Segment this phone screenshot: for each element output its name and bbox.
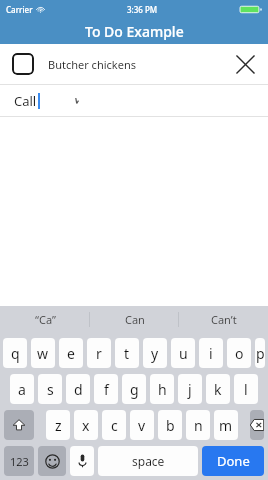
button[interactable]: u	[171, 338, 195, 368]
button[interactable]: space	[98, 446, 198, 476]
button[interactable]: b	[158, 410, 182, 440]
staticText: g	[130, 380, 139, 399]
staticText: h	[158, 380, 167, 399]
button[interactable]: Dictate	[70, 446, 94, 476]
staticText: n	[194, 416, 203, 435]
button[interactable]: Done	[202, 446, 264, 476]
staticText: q	[11, 344, 20, 363]
staticText: Call	[14, 92, 37, 110]
button[interactable]: 123	[4, 446, 34, 476]
staticText: i	[209, 344, 213, 363]
button[interactable]: k	[206, 374, 230, 404]
staticText: c	[111, 416, 118, 435]
button[interactable]: a	[10, 374, 34, 404]
button[interactable]: Backspace	[250, 410, 264, 440]
button[interactable]: d	[66, 374, 90, 404]
staticText: space	[132, 453, 165, 469]
staticText: t	[124, 344, 130, 363]
staticText: y	[151, 344, 159, 363]
staticText: Can’t	[211, 312, 237, 327]
button[interactable]: x	[74, 410, 98, 440]
button[interactable]: m	[214, 410, 238, 440]
staticText: d	[74, 380, 83, 399]
button[interactable]: Shift	[4, 410, 34, 440]
button[interactable]: g	[122, 374, 146, 404]
staticText: Done	[217, 452, 250, 470]
button[interactable]: i	[199, 338, 223, 368]
button[interactable]: f	[94, 374, 118, 404]
button[interactable]: z	[46, 410, 70, 440]
button[interactable]: y	[143, 338, 167, 368]
staticText: 123	[10, 454, 29, 469]
button[interactable]: o	[227, 338, 251, 368]
button[interactable]: Toggle complete	[12, 53, 34, 75]
staticText: Carrier	[6, 4, 33, 15]
staticText: w	[37, 344, 49, 363]
button[interactable]: q	[3, 338, 27, 368]
button[interactable]: e	[59, 338, 83, 368]
staticText: p	[256, 344, 265, 363]
staticText: “Ca”	[35, 312, 56, 327]
button[interactable]: s	[38, 374, 62, 404]
button[interactable]: t	[115, 338, 139, 368]
button[interactable]: w	[31, 338, 55, 368]
staticText: To Do Example	[85, 22, 184, 41]
staticText: v	[138, 416, 146, 435]
button[interactable]: j	[178, 374, 202, 404]
staticText: 3:36 PM	[127, 4, 158, 15]
button[interactable]: h	[150, 374, 174, 404]
staticText: Can	[125, 312, 145, 327]
button[interactable]: n	[186, 410, 210, 440]
staticText: o	[235, 344, 244, 363]
staticText: z	[55, 416, 62, 435]
button[interactable]: Can	[90, 306, 179, 333]
staticText: j	[188, 380, 192, 399]
staticText: a	[18, 380, 26, 399]
button[interactable]: Emoji	[38, 446, 66, 476]
button[interactable]: l	[234, 374, 258, 404]
staticText: e	[67, 344, 75, 363]
staticText: f	[104, 380, 109, 399]
staticText: k	[214, 380, 222, 399]
staticText: l	[244, 380, 248, 399]
staticText: Butcher chickens	[48, 57, 136, 72]
button[interactable]: c	[102, 410, 126, 440]
staticText: x	[82, 416, 90, 435]
staticText: r	[96, 344, 102, 363]
staticText: m	[219, 416, 233, 435]
button[interactable]: Delete	[226, 45, 264, 83]
button[interactable]: p	[255, 338, 265, 368]
button[interactable]: r	[87, 338, 111, 368]
staticText: u	[179, 344, 188, 363]
staticText: b	[166, 416, 175, 435]
button[interactable]: “Ca”	[0, 306, 90, 333]
button[interactable]: v	[130, 410, 154, 440]
button[interactable]: Can’t	[179, 306, 268, 333]
staticText: s	[47, 380, 54, 399]
